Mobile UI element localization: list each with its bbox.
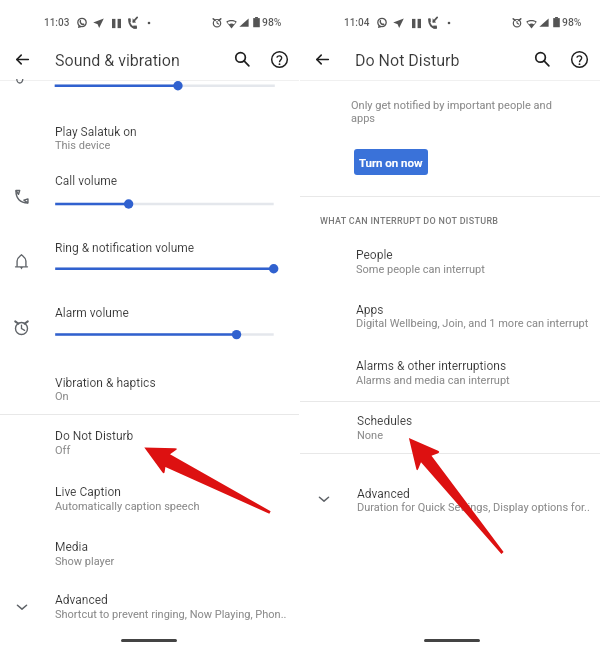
button[interactable]: Advanced	[300, 462, 600, 516]
button[interactable]: Live Caption	[0, 468, 299, 520]
staticText: Show player	[55, 555, 115, 568]
button[interactable]: Advanced	[0, 572, 299, 624]
button[interactable]: Search	[528, 45, 556, 73]
staticText: Call volume	[55, 174, 118, 188]
staticText: Advanced	[357, 487, 410, 501]
staticText: Apps	[356, 303, 384, 317]
button[interactable]: Apps	[300, 290, 600, 344]
staticText: Shortcut to prevent ringing, Now Playing…	[55, 608, 287, 621]
button[interactable]: Search	[228, 45, 256, 73]
staticText: None	[357, 429, 384, 442]
staticText: 98%	[562, 16, 582, 28]
button[interactable]: Ring & notification volume	[0, 234, 299, 284]
button[interactable]: Help	[265, 45, 293, 73]
button[interactable]: People	[300, 236, 600, 290]
staticText: Sound & vibration	[55, 51, 180, 70]
staticText: Alarms & other interruptions	[356, 359, 507, 373]
staticText: 98%	[262, 16, 282, 28]
staticText: People	[356, 248, 393, 262]
staticText: apps	[351, 112, 376, 125]
staticText: Vibration & haptics	[55, 376, 156, 390]
staticText: Schedules	[357, 414, 413, 428]
staticText: Advanced	[55, 593, 108, 607]
button[interactable]: Call volume	[0, 168, 299, 218]
staticText: Alarms and media can interrupt	[356, 374, 510, 387]
staticText: 11:03	[44, 17, 70, 29]
staticText: Ring & notification volume	[55, 241, 195, 255]
staticText: Play Salatuk on	[55, 125, 137, 139]
staticText: Duration for Quick Settings, Display opt…	[357, 501, 590, 514]
button[interactable]: Media	[0, 520, 299, 572]
staticText: Do Not Disturb	[55, 429, 134, 443]
button[interactable]: Turn on now	[354, 149, 428, 175]
staticText: Off	[55, 444, 71, 457]
staticText: Do Not Disturb	[355, 51, 460, 70]
staticText: Automatically caption speech	[55, 500, 200, 513]
staticText: Some people can interrupt	[356, 263, 485, 276]
staticText: This device	[55, 139, 111, 152]
button[interactable]: Do Not Disturb	[0, 416, 299, 468]
button[interactable]: Back	[8, 45, 36, 73]
staticText: Digital Wellbeing, Join, and 1 more can …	[356, 317, 589, 330]
button[interactable]: Schedules	[300, 402, 600, 452]
button[interactable]: Play Salatuk on	[0, 110, 299, 160]
staticText: Alarm volume	[55, 306, 129, 320]
staticText: Only get notified by important people an…	[351, 99, 552, 112]
button[interactable]: Alarm volume	[0, 299, 299, 349]
staticText: On	[55, 390, 69, 403]
staticText: 11:04	[344, 17, 370, 29]
staticText: Media	[55, 540, 89, 554]
button[interactable]: Vibration & haptics	[0, 362, 299, 413]
staticText: Turn on now	[359, 156, 423, 169]
button[interactable]: Help	[565, 45, 593, 73]
staticText: Live Caption	[55, 485, 121, 499]
button[interactable]: Alarms & other interruptions	[300, 344, 600, 398]
staticText: WHAT CAN INTERRUPT DO NOT DISTURB	[320, 216, 499, 227]
button[interactable]: Back	[308, 45, 336, 73]
